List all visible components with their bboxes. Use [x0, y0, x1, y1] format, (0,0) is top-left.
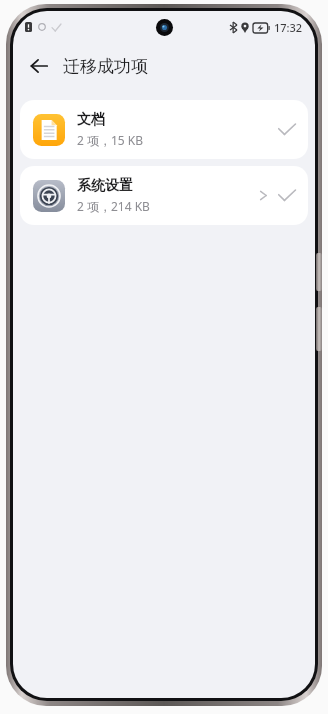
staticText: 文档 [77, 111, 105, 129]
button[interactable]: Back [21, 48, 57, 84]
button[interactable]: 系统设置 [20, 166, 308, 225]
other: Volume [316, 253, 322, 291]
staticText: 系统设置 [77, 177, 133, 195]
staticText: 2 项，214 KB [77, 198, 150, 214]
other: Power [316, 307, 322, 351]
staticText: 2 项，15 KB [77, 132, 144, 148]
staticText: 迁移成功项 [63, 56, 148, 77]
staticText: 17:32 [274, 20, 303, 35]
button[interactable]: 文档 [20, 100, 308, 159]
